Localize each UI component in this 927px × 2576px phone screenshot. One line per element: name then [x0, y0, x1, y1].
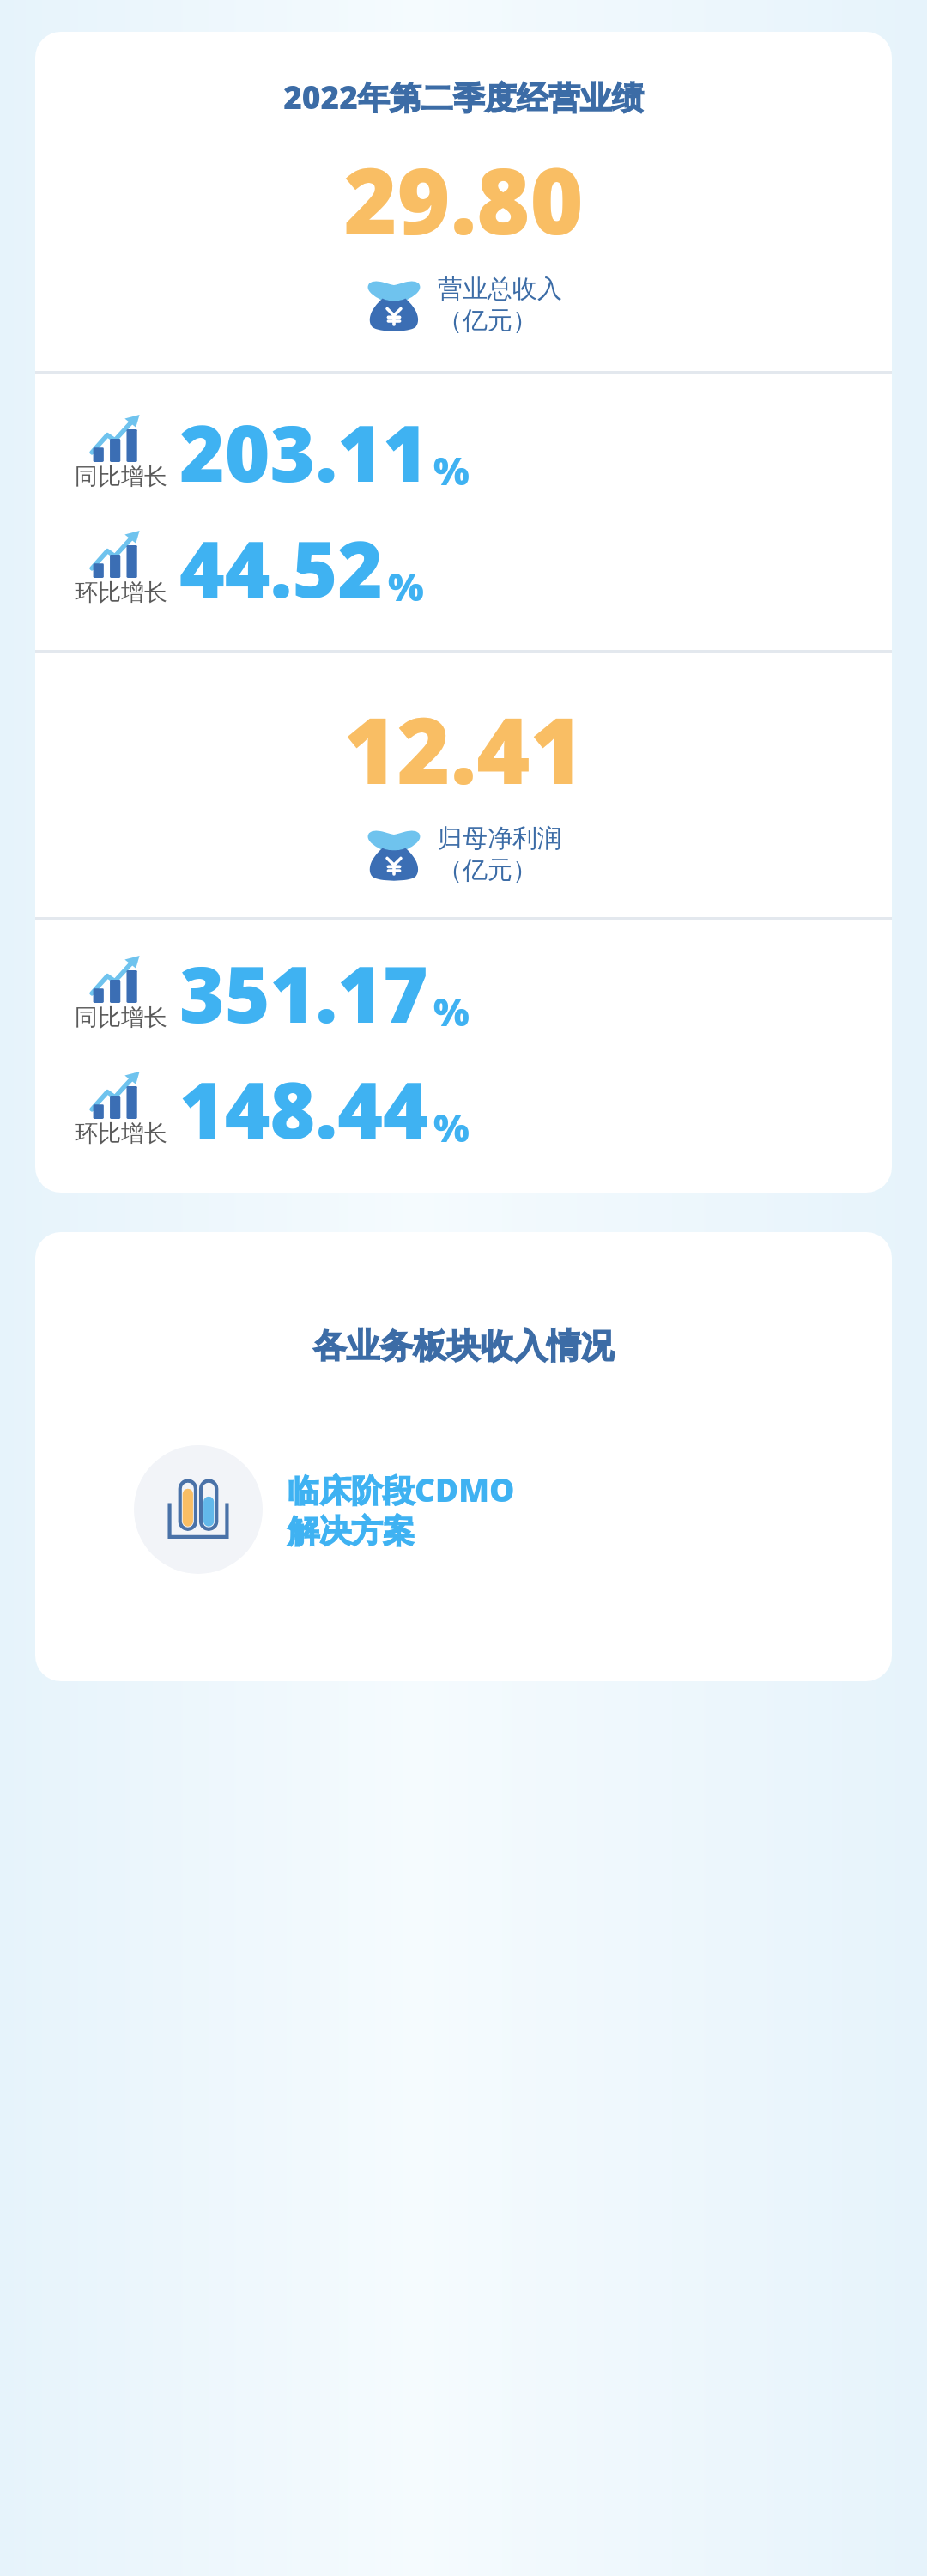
staticText: 解决方案 — [288, 1511, 415, 1552]
staticText: 同比增长 — [75, 462, 167, 491]
staticText: 同比增长 — [75, 1003, 167, 1032]
staticText: 351.17 — [179, 940, 428, 1046]
staticText: 44.52 — [179, 515, 383, 621]
staticText: % — [433, 1102, 470, 1153]
other: Money bag — [366, 278, 422, 331]
other: Money bag — [366, 828, 422, 881]
staticText: 各业务板块收入情况 — [35, 1325, 892, 1367]
other: Test tubes — [166, 1477, 231, 1542]
staticText: % — [388, 561, 424, 612]
other: Growth chart — [90, 414, 152, 462]
staticText: 2022年第二季度经营业绩 — [35, 75, 892, 118]
staticText: 环比增长 — [75, 1119, 167, 1148]
staticText: % — [433, 445, 470, 496]
staticText: 环比增长 — [75, 578, 167, 607]
staticText: （亿元） — [438, 305, 537, 337]
staticText: 203.11 — [179, 399, 428, 505]
staticText: 148.44 — [179, 1056, 428, 1162]
staticText: 29.80 — [35, 137, 892, 261]
other: Growth chart — [90, 955, 152, 1003]
staticText: 临床阶段CDMO — [288, 1467, 515, 1511]
staticText: 12.41 — [35, 687, 892, 811]
staticText: （亿元） — [438, 854, 537, 886]
staticText: 归母净利润 — [438, 823, 562, 854]
other: Growth chart — [90, 1071, 152, 1119]
staticText: % — [433, 986, 470, 1037]
button[interactable]: Test tubes — [35, 1441, 892, 1578]
other: Growth chart — [90, 530, 152, 578]
staticText: 营业总收入 — [438, 273, 562, 305]
